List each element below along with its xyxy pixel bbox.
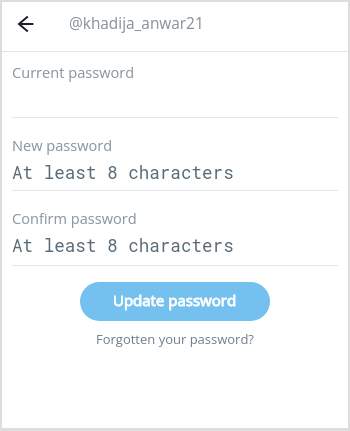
staticText: New password xyxy=(12,135,113,155)
button[interactable]: Current password xyxy=(2,52,348,117)
button[interactable]: Confirm password xyxy=(2,191,348,265)
staticText: Update password xyxy=(113,290,237,310)
button[interactable]: New password xyxy=(2,118,348,190)
staticText: Forgotten your password? xyxy=(96,330,254,348)
staticText: At least 8 characters xyxy=(12,161,234,184)
button[interactable]: Back xyxy=(2,2,50,51)
staticText: Confirm password xyxy=(12,208,137,228)
staticText: @khadija_anwar21 xyxy=(69,13,204,34)
staticText: At least 8 characters xyxy=(12,234,234,257)
button[interactable]: Forgotten your password? xyxy=(88,327,262,351)
button[interactable]: Update password xyxy=(80,282,270,321)
staticText: Current password xyxy=(12,62,135,82)
